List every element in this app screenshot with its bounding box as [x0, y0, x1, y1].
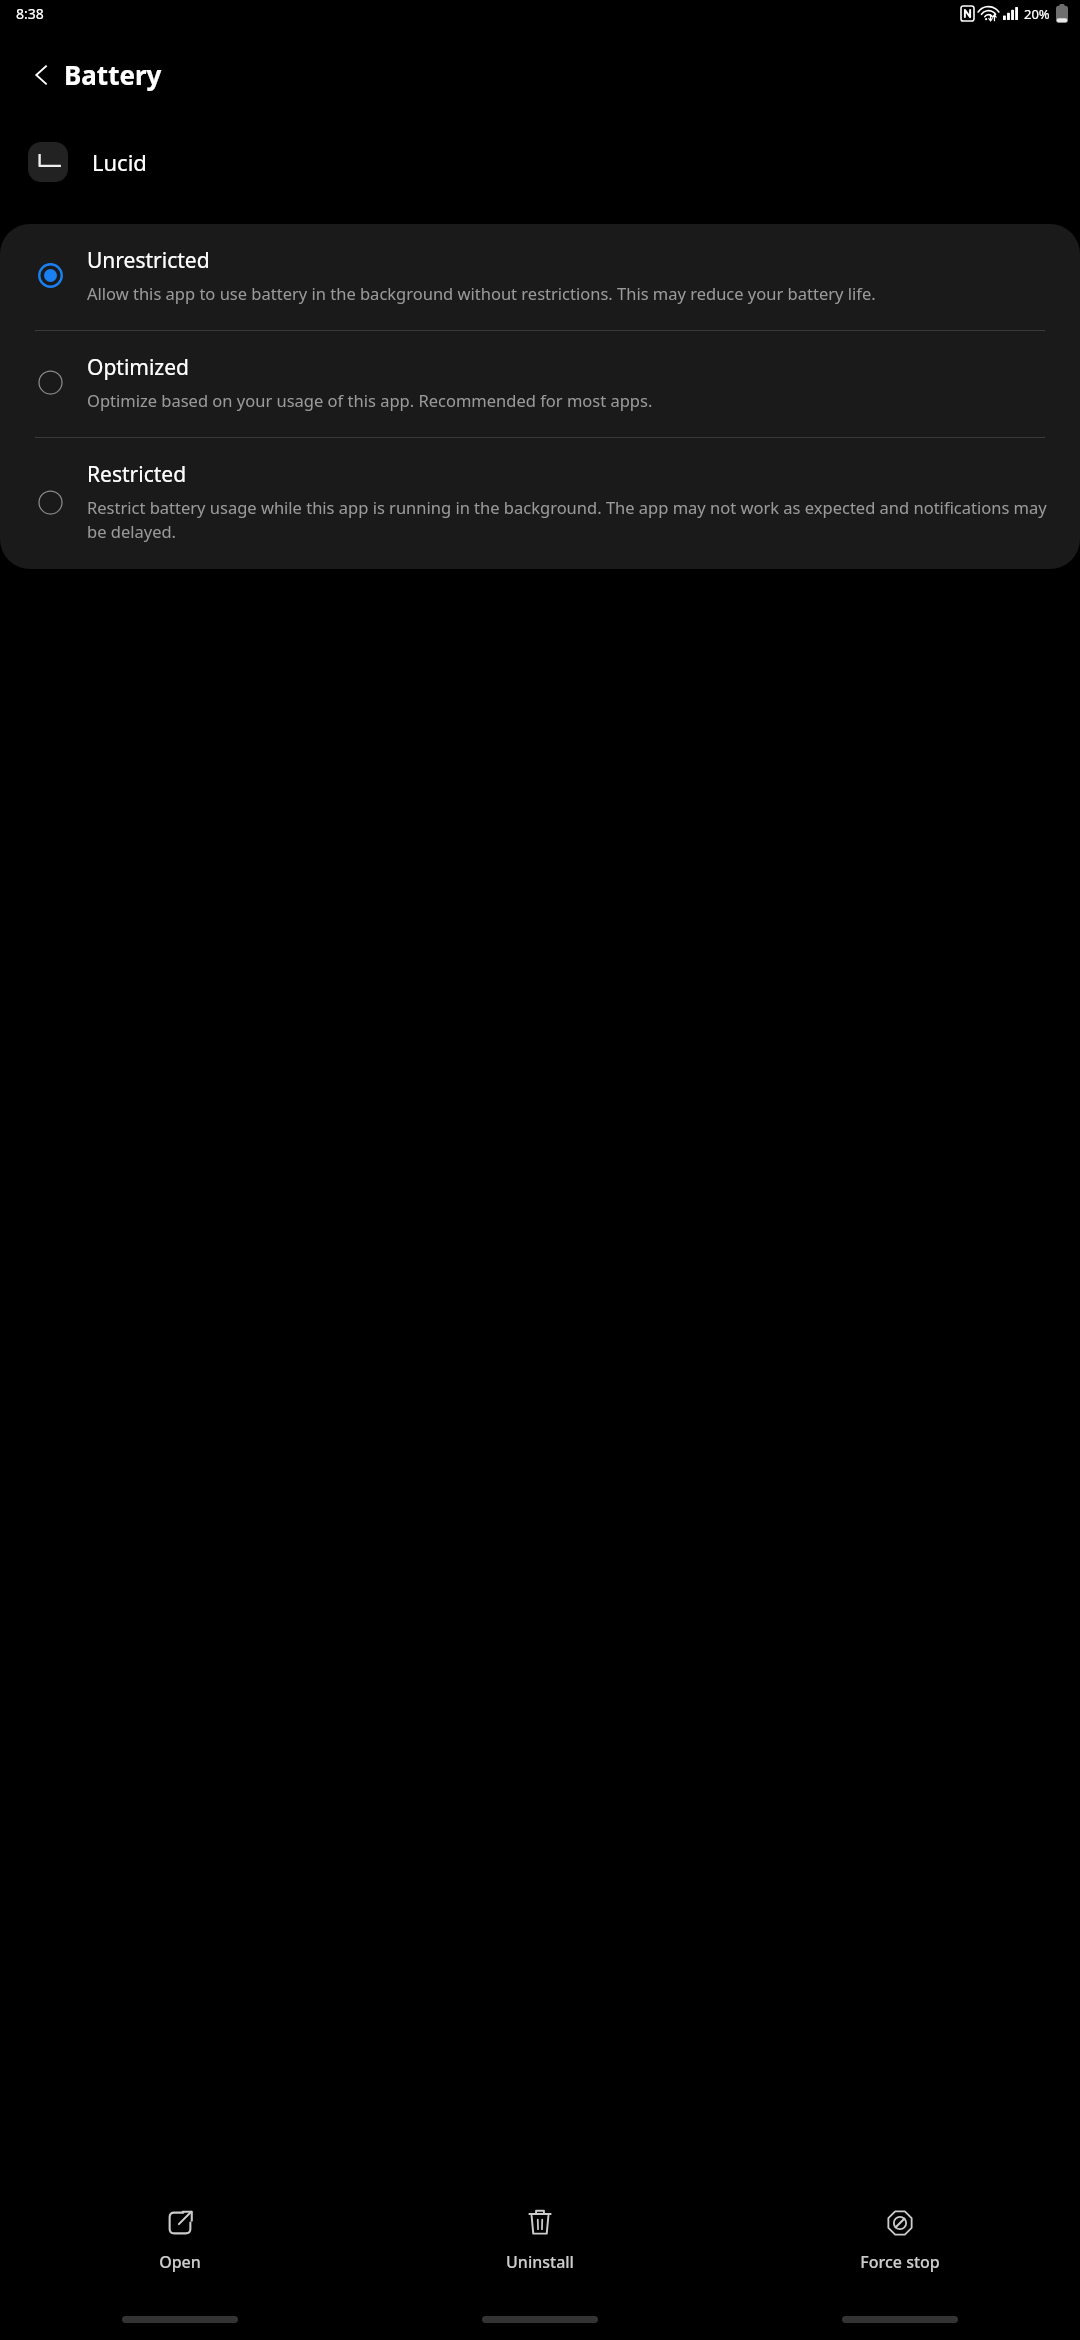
button[interactable]: Back: [18, 51, 66, 99]
staticText: Optimized: [87, 353, 189, 382]
staticText: Restrict battery usage while this app is…: [87, 496, 1050, 543]
button[interactable]: Restricted: [0, 438, 1080, 569]
staticText: Force stop: [860, 2251, 940, 2273]
button[interactable]: Uninstall: [360, 2203, 720, 2279]
staticText: Uninstall: [506, 2251, 574, 2273]
button[interactable]: Optimized: [0, 331, 1080, 437]
staticText: Restricted: [87, 460, 187, 489]
button[interactable]: Force stop: [720, 2203, 1080, 2279]
button[interactable]: Unrestricted: [0, 224, 1080, 330]
staticText: Battery: [64, 57, 162, 92]
staticText: Open: [159, 2251, 201, 2273]
staticText: Lucid: [92, 147, 147, 177]
staticText: 20%: [1024, 5, 1050, 23]
staticText: 8:38: [16, 4, 44, 23]
button[interactable]: Open: [0, 2203, 360, 2279]
staticText: Unrestricted: [87, 246, 210, 275]
staticText: Optimize based on your usage of this app…: [87, 389, 653, 411]
staticText: Allow this app to use battery in the bac…: [87, 282, 876, 304]
